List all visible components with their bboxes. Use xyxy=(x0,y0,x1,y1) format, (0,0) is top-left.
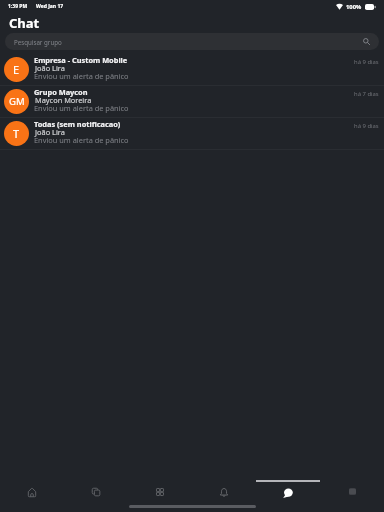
staticText: há 9 dias xyxy=(354,122,379,130)
staticText: Grupo Maycon xyxy=(34,87,88,97)
button[interactable]: T xyxy=(0,118,384,150)
staticText: Enviou um alerta de pânico xyxy=(34,71,129,81)
button[interactable]: E xyxy=(0,54,384,86)
button[interactable]: Pesquisar grupo xyxy=(5,33,379,50)
staticText: Todas (sem notificacao) xyxy=(34,119,121,129)
staticText: há 9 dias xyxy=(354,58,379,66)
staticText: Chat xyxy=(9,14,40,32)
staticText: E xyxy=(13,62,20,77)
staticText: 100% xyxy=(346,3,362,11)
button[interactable]: GM xyxy=(0,86,384,118)
staticText: há 7 dias xyxy=(354,90,379,98)
staticText: Wed Jan 17 xyxy=(36,3,64,10)
button[interactable]: More xyxy=(320,470,384,512)
staticText: Empresa - Custom Mobile xyxy=(34,55,128,65)
button[interactable]: Home xyxy=(0,470,64,512)
staticText: 1:39 PM xyxy=(8,3,28,10)
staticText: T xyxy=(13,126,20,141)
staticText: GM xyxy=(9,95,25,108)
button[interactable]: Apps xyxy=(128,470,192,512)
button[interactable]: Documents xyxy=(64,470,128,512)
staticText: Pesquisar grupo xyxy=(14,38,62,46)
button[interactable]: Notifications xyxy=(192,470,256,512)
staticText: Enviou um alerta de pânico xyxy=(34,103,129,113)
staticText: João Lira xyxy=(35,63,65,73)
staticText: João Lira xyxy=(35,127,65,137)
button[interactable]: Chat xyxy=(256,470,320,512)
staticText: Enviou um alerta de pânico xyxy=(34,135,129,145)
staticText: Maycon Moreira xyxy=(35,95,92,105)
